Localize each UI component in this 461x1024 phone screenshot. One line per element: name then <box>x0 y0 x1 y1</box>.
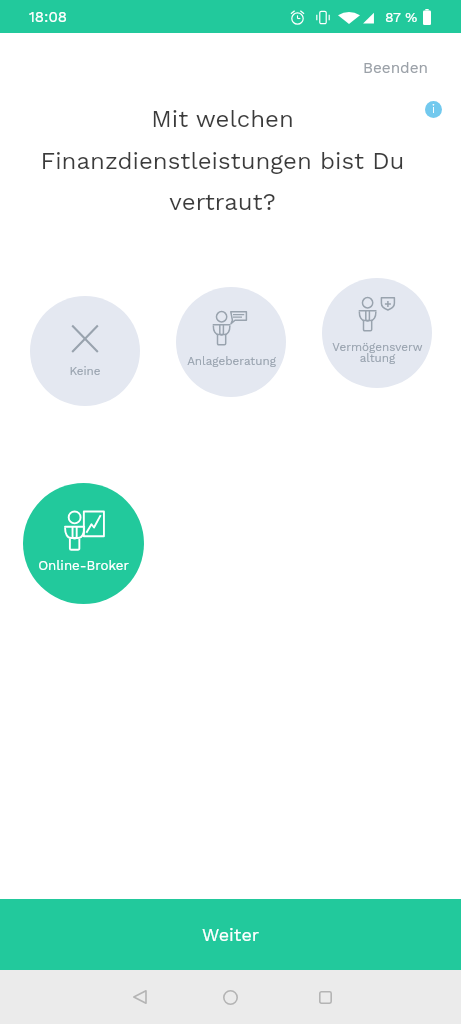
staticText: Beenden <box>363 59 428 77</box>
button[interactable]: Anlageberatung <box>176 287 286 397</box>
button[interactable]: Weiter <box>0 899 461 970</box>
staticText: 18:08 <box>29 8 68 26</box>
staticText: Anlageberatung <box>187 354 276 368</box>
button[interactable]: Information <box>425 101 442 118</box>
button[interactable]: Online-Broker <box>23 483 144 604</box>
button[interactable]: Back <box>124 982 154 1012</box>
staticText: 87 % <box>385 9 418 25</box>
staticText: Mit welchen Finanzdienstleistungen bist … <box>30 105 415 215</box>
staticText: Vermögensverw altung <box>332 340 423 365</box>
button[interactable]: Recent apps <box>310 982 340 1012</box>
staticText: Weiter <box>202 924 260 945</box>
staticText: Keine <box>69 364 101 378</box>
button[interactable]: Beenden <box>363 59 428 77</box>
button[interactable]: Home <box>215 982 245 1012</box>
staticText: i <box>432 103 435 116</box>
button[interactable]: Keine <box>30 296 140 406</box>
button[interactable]: Vermögensverw altung <box>322 278 432 388</box>
staticText: Online-Broker <box>38 558 129 574</box>
